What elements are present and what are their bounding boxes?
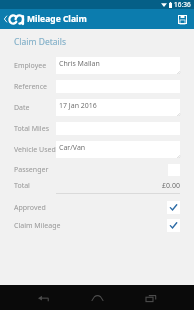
- button[interactable]: Vehicle Used: [14, 141, 180, 158]
- staticText: Claim Details: [14, 36, 66, 48]
- staticText: Reference: [14, 82, 47, 92]
- button[interactable]: Employee: [14, 57, 180, 74]
- staticText: Mileage Claim: [27, 13, 87, 25]
- button[interactable]: Total Miles: [14, 122, 180, 135]
- staticText: Passenger: [14, 165, 49, 175]
- staticText: Total: [14, 181, 30, 191]
- staticText: Chris Mallan: [59, 59, 100, 69]
- button[interactable]: Approved: [14, 201, 180, 214]
- staticText: 16:36: [174, 0, 191, 9]
- button[interactable]: Recent apps: [140, 287, 162, 309]
- button[interactable]: Total: [14, 181, 180, 194]
- button[interactable]: Passenger: [14, 164, 180, 176]
- staticText: Total Miles: [14, 124, 49, 134]
- staticText: £0.00: [162, 181, 180, 191]
- staticText: Claim Mileage: [14, 221, 61, 231]
- staticText: Vehicle Used: [14, 145, 56, 155]
- button[interactable]: Back: [32, 287, 54, 309]
- button[interactable]: Reference: [14, 80, 180, 93]
- staticText: 17 Jan 2016: [59, 101, 97, 111]
- staticText: Date: [14, 103, 30, 113]
- button[interactable]: Navigate up: [1, 15, 9, 23]
- staticText: Employee: [14, 61, 47, 71]
- button[interactable]: Home: [86, 287, 108, 309]
- button[interactable]: Date: [14, 99, 180, 116]
- button[interactable]: Claim Mileage: [14, 219, 180, 232]
- staticText: Approved: [14, 203, 46, 213]
- button[interactable]: Save: [174, 11, 190, 27]
- staticText: Car/Van: [59, 143, 86, 153]
